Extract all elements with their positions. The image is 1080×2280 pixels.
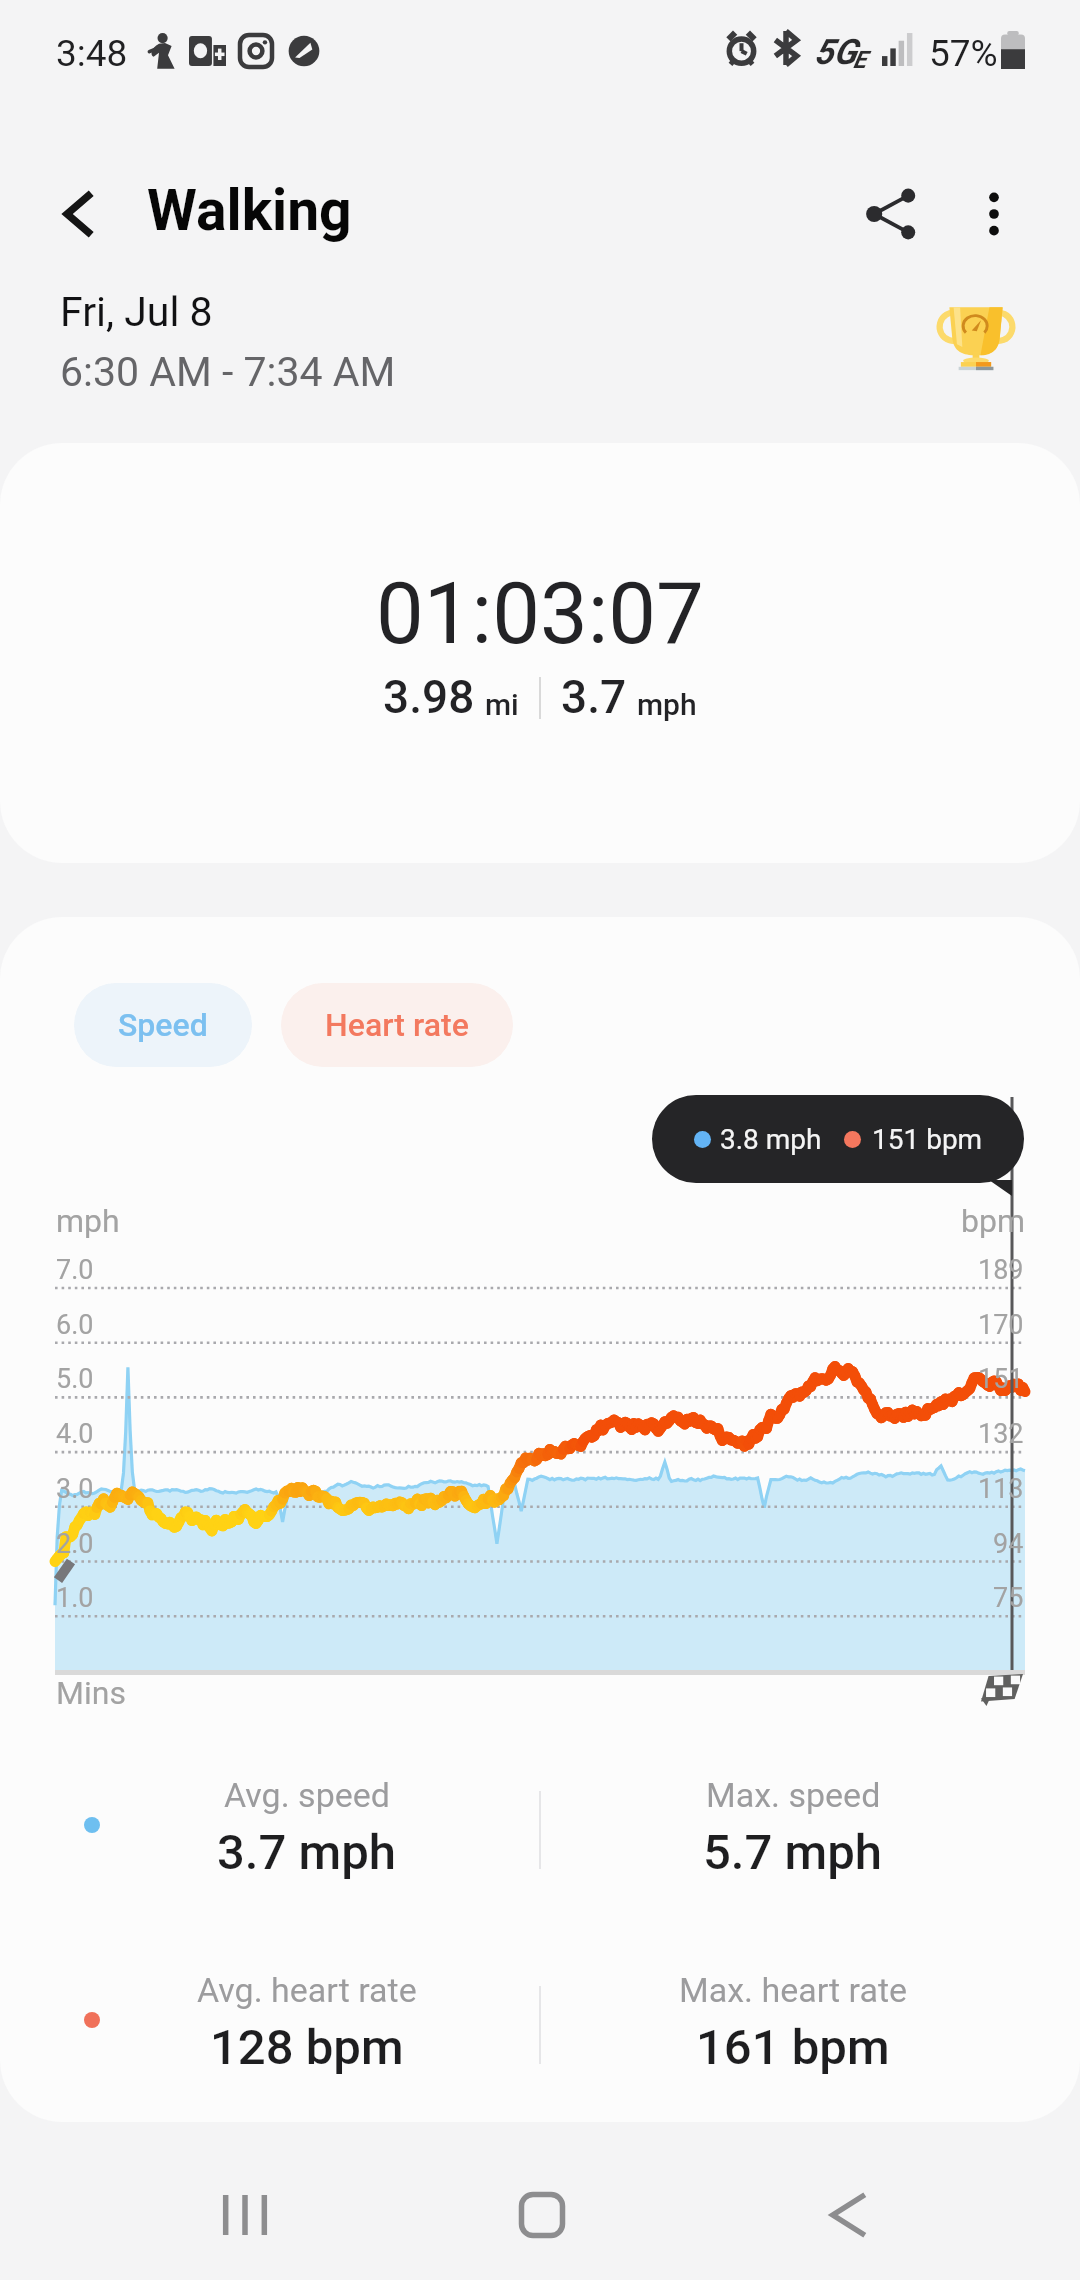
staticText: 170 bbox=[978, 1309, 1024, 1341]
staticText: 94 bbox=[993, 1528, 1024, 1560]
staticText: Avg. speed bbox=[224, 1775, 390, 1815]
staticText: 2.0 bbox=[56, 1528, 94, 1560]
staticText: 5.0 bbox=[56, 1363, 94, 1395]
button[interactable]: Recents bbox=[175, 2155, 315, 2275]
staticText: 3.7 mph bbox=[217, 1824, 397, 1881]
staticText: Speed bbox=[118, 1006, 208, 1044]
button[interactable]: More options bbox=[944, 164, 1044, 264]
staticText: Max. speed bbox=[706, 1775, 881, 1815]
staticText: 7.0 bbox=[56, 1254, 94, 1286]
staticText: Max. heart rate bbox=[679, 1970, 908, 2010]
staticText: mph bbox=[637, 687, 697, 722]
staticText: Heart rate bbox=[325, 1006, 469, 1044]
staticText: 1.0 bbox=[56, 1582, 94, 1614]
staticText: 75 bbox=[993, 1582, 1024, 1614]
staticText: 6:30 AM - 7:34 AM bbox=[60, 348, 396, 396]
staticText: bpm bbox=[961, 1202, 1025, 1240]
staticText: 151 bbox=[978, 1363, 1024, 1395]
staticText: 57% bbox=[929, 32, 998, 75]
staticText: 161 bpm bbox=[696, 2019, 890, 2076]
staticText: 3.7 bbox=[561, 670, 627, 724]
button[interactable]: 3.8 mph bbox=[652, 1095, 1024, 1183]
staticText: 6.0 bbox=[56, 1309, 94, 1341]
staticText: 3.8 mph bbox=[720, 1123, 822, 1156]
button[interactable]: Share bbox=[842, 164, 942, 264]
staticText: 189 bbox=[978, 1254, 1024, 1286]
button[interactable]: Back bbox=[30, 164, 130, 264]
staticText: 3.0 bbox=[56, 1473, 94, 1505]
staticText: mph bbox=[56, 1202, 120, 1240]
button[interactable]: Heart rate bbox=[281, 983, 513, 1067]
staticText: Avg. heart rate bbox=[197, 1970, 417, 2010]
staticText: 5.7 mph bbox=[703, 1824, 883, 1881]
staticText: Fri, Jul 8 bbox=[60, 288, 213, 336]
button[interactable]: Home bbox=[472, 2155, 612, 2275]
staticText: 01:03:07 bbox=[376, 564, 704, 664]
staticText: 4.0 bbox=[56, 1418, 94, 1450]
staticText: 5G bbox=[814, 32, 857, 73]
staticText: 132 bbox=[978, 1418, 1024, 1450]
staticText: E bbox=[853, 46, 867, 74]
staticText: mi bbox=[485, 687, 519, 722]
button[interactable]: 01:03:07 bbox=[0, 443, 1080, 863]
button[interactable]: Back bbox=[778, 2155, 918, 2275]
button[interactable]: Speed bbox=[74, 983, 252, 1067]
staticText: 151 bpm bbox=[872, 1123, 983, 1156]
staticText: 113 bbox=[978, 1473, 1024, 1505]
staticText: 3:48 bbox=[56, 32, 128, 75]
staticText: 128 bpm bbox=[210, 2019, 404, 2076]
staticText: Walking bbox=[147, 177, 352, 244]
staticText: 3.98 bbox=[383, 670, 475, 724]
staticText: Mins bbox=[56, 1674, 126, 1712]
